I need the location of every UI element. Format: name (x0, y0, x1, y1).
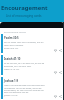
button[interactable]: Favorite (54, 49, 57, 52)
staticText: Joshua 1:9 NIV (4, 94, 18, 97)
staticText: Isaiah 41:10 NIV (4, 68, 20, 71)
staticText: So do not fear, for I am with you; do no… (4, 62, 45, 67)
button[interactable]: Share (59, 71, 62, 74)
staticText: List of encouraging cards (6, 14, 42, 18)
button[interactable]: Favorite (54, 95, 57, 98)
staticText: For his anger lasts only a moment, but h… (4, 41, 45, 46)
button[interactable]: Share (59, 49, 62, 52)
button[interactable]: Psalm 30:5 (0, 34, 64, 53)
button[interactable]: Encouragement (0, 0, 64, 22)
button[interactable]: Share (59, 95, 62, 98)
staticText: Have I not commanded you? Be strong and … (4, 84, 45, 93)
staticText: Psalm 30:5 (4, 36, 19, 40)
staticText: Isaiah 41:10 (4, 57, 21, 61)
staticText: Encouraging verses (4, 30, 27, 33)
staticText: Psalm 30:5 NIV (4, 47, 19, 50)
staticText: Joshua 1:9 (4, 79, 19, 83)
button[interactable]: Joshua 1:9 (0, 77, 64, 99)
button[interactable]: Favorite (54, 71, 57, 74)
staticText: Encouragement (1, 4, 48, 12)
button[interactable]: Isaiah 41:10 (0, 55, 64, 75)
